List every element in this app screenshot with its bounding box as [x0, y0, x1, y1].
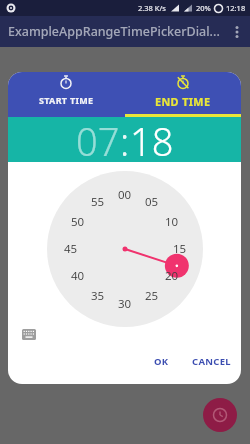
staticText: 07 [76, 115, 120, 160]
staticText: 12:18 [226, 3, 246, 13]
staticText: 25 [145, 288, 159, 304]
staticText: 40 [71, 268, 85, 284]
button[interactable]: CANCEL [189, 353, 233, 369]
staticText: 10 [165, 214, 179, 230]
staticText: 00 [118, 187, 132, 203]
button[interactable]: START TIME [8, 72, 124, 117]
staticText: 2.38 K/s [138, 3, 166, 13]
staticText: 15 [173, 241, 187, 257]
staticText: OK [154, 355, 169, 368]
staticText: : [120, 115, 130, 160]
staticText: 05 [145, 194, 159, 210]
staticText: CANCEL [192, 355, 231, 368]
button[interactable] [203, 398, 237, 432]
staticText: 55 [91, 194, 105, 210]
staticText: 30 [118, 296, 132, 312]
button[interactable]: OK [148, 353, 174, 369]
staticText: 35 [91, 288, 105, 304]
staticText: 45 [64, 241, 78, 257]
button[interactable]: END TIME [124, 72, 241, 117]
button[interactable] [22, 329, 36, 340]
staticText: 20 [165, 268, 179, 284]
staticText: ExampleAppRangeTimePickerDial... [8, 23, 220, 40]
staticText: START TIME [39, 94, 94, 106]
staticText: 18 [130, 115, 174, 160]
staticText: 20% [196, 3, 211, 13]
staticText: END TIME [155, 94, 211, 109]
staticText: 50 [71, 214, 85, 230]
